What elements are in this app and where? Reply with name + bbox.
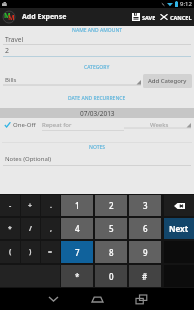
button[interactable]: , xyxy=(41,218,60,239)
staticText: 2 xyxy=(5,46,10,56)
button[interactable]: = xyxy=(41,241,60,263)
button[interactable]: Next xyxy=(164,218,194,239)
button[interactable]: * xyxy=(61,265,93,287)
button[interactable]: - xyxy=(0,195,20,216)
staticText: 9:12 xyxy=(180,0,192,8)
button[interactable]: . xyxy=(41,195,60,216)
button[interactable]: One-Off xyxy=(0,121,36,129)
staticText: * xyxy=(8,224,12,234)
staticText: Notes (Optional) xyxy=(5,155,52,163)
staticText: DATE AND RECURRENCE xyxy=(68,95,126,102)
button[interactable]: ) xyxy=(21,241,40,263)
staticText: Add Category xyxy=(148,77,187,85)
staticText: 07/03/2013 xyxy=(80,109,115,118)
staticText: 2 xyxy=(109,200,114,211)
staticText: Next xyxy=(169,223,189,234)
staticText: 4 xyxy=(75,223,80,234)
staticText: CATEGORY xyxy=(84,64,110,71)
button[interactable]: 8 xyxy=(95,241,127,263)
staticText: + xyxy=(28,201,33,211)
staticText: 7 xyxy=(75,247,80,258)
staticText: 9 xyxy=(143,247,148,258)
staticText: Bills xyxy=(5,76,17,84)
button[interactable]: 0 xyxy=(95,265,127,287)
button[interactable]: 7 xyxy=(61,241,93,263)
button[interactable]: App icon, up xyxy=(2,10,16,24)
staticText: ( xyxy=(9,247,12,257)
button[interactable]: Delete xyxy=(164,195,194,216)
button[interactable]: + xyxy=(21,195,40,216)
staticText: Travel xyxy=(5,35,24,44)
button[interactable]: 2 xyxy=(0,45,194,56)
button[interactable]: Back xyxy=(38,288,68,310)
button[interactable]: 4 xyxy=(61,218,93,239)
staticText: # xyxy=(142,271,148,282)
button[interactable]: Add Category xyxy=(143,74,192,88)
staticText: Repeat for xyxy=(42,121,72,129)
button[interactable]: ( xyxy=(0,241,20,263)
staticText: = xyxy=(48,247,53,257)
button[interactable]: 3 xyxy=(129,195,161,216)
button[interactable]: / xyxy=(21,218,40,239)
staticText: , xyxy=(50,224,52,234)
button[interactable]: Repeat for xyxy=(42,119,124,132)
staticText: Weeks xyxy=(150,121,169,129)
staticText: 8 xyxy=(109,247,114,258)
button[interactable]: 2 xyxy=(95,195,127,216)
button[interactable]: Notes (Optional) xyxy=(0,152,194,165)
button[interactable]: 5 xyxy=(95,218,127,239)
staticText: 0 xyxy=(109,271,114,282)
button[interactable]: CANCEL xyxy=(157,8,193,26)
staticText: 5 xyxy=(109,223,114,234)
staticText: . xyxy=(50,201,52,211)
staticText: SAVE xyxy=(142,14,156,21)
staticText: - xyxy=(9,201,12,211)
staticText: / xyxy=(29,224,32,234)
staticText: M xyxy=(4,11,11,21)
staticText: * xyxy=(75,271,80,282)
button[interactable]: * xyxy=(0,218,20,239)
button[interactable]: 9 xyxy=(129,241,161,263)
button[interactable]: Travel xyxy=(0,34,194,44)
button[interactable]: SAVE xyxy=(129,8,157,26)
staticText: NOTES xyxy=(89,144,105,151)
button[interactable]: 6 xyxy=(129,218,161,239)
staticText: 6 xyxy=(143,223,148,234)
staticText: M xyxy=(8,13,15,23)
staticText: NAME AND AMOUNT xyxy=(72,27,123,34)
button[interactable]: 07/03/2013 xyxy=(0,108,194,118)
staticText: Add Expense xyxy=(22,12,67,22)
button[interactable]: Home xyxy=(82,288,112,310)
button[interactable]: # xyxy=(129,265,161,287)
button[interactable]: 1 xyxy=(61,195,93,216)
button[interactable]: Weeks xyxy=(124,119,194,132)
button[interactable]: Recent apps xyxy=(126,288,156,310)
staticText: CANCEL xyxy=(170,14,192,21)
staticText: 1 xyxy=(75,200,80,211)
staticText: ) xyxy=(29,247,32,257)
staticText: One-Off xyxy=(13,121,36,129)
staticText: 3 xyxy=(143,200,148,211)
button[interactable]: Bills xyxy=(0,72,143,89)
